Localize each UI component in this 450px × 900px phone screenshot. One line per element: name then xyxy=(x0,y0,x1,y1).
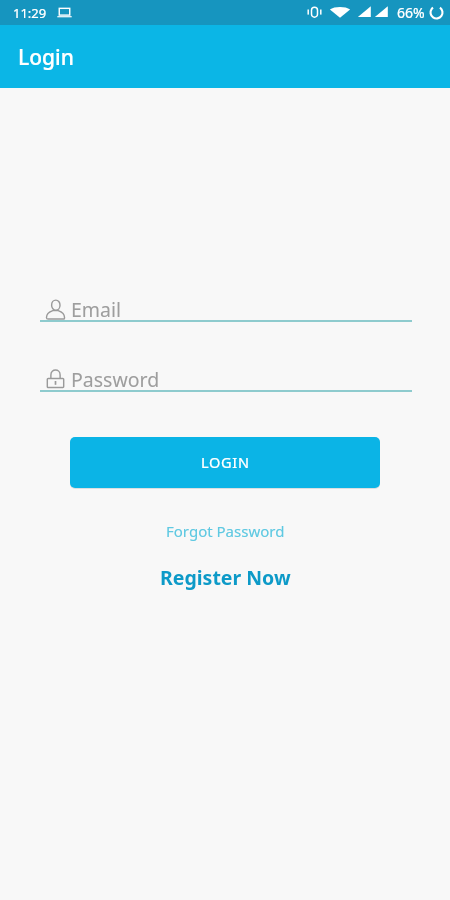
staticText: LOGIN xyxy=(201,452,250,472)
staticText: Register Now xyxy=(160,564,291,591)
staticText: Login xyxy=(18,43,74,72)
button[interactable]: LOGIN xyxy=(70,437,380,488)
staticText: Forgot Password xyxy=(166,521,285,541)
staticText: 11:29 xyxy=(13,4,47,22)
button[interactable]: Register Now xyxy=(148,559,303,596)
staticText: Email xyxy=(71,296,122,323)
button[interactable]: Forgot Password xyxy=(154,516,297,546)
button[interactable]: Password xyxy=(40,360,412,392)
button[interactable]: Email xyxy=(40,290,412,322)
staticText: Password xyxy=(71,366,160,393)
staticText: 66% xyxy=(397,3,425,22)
